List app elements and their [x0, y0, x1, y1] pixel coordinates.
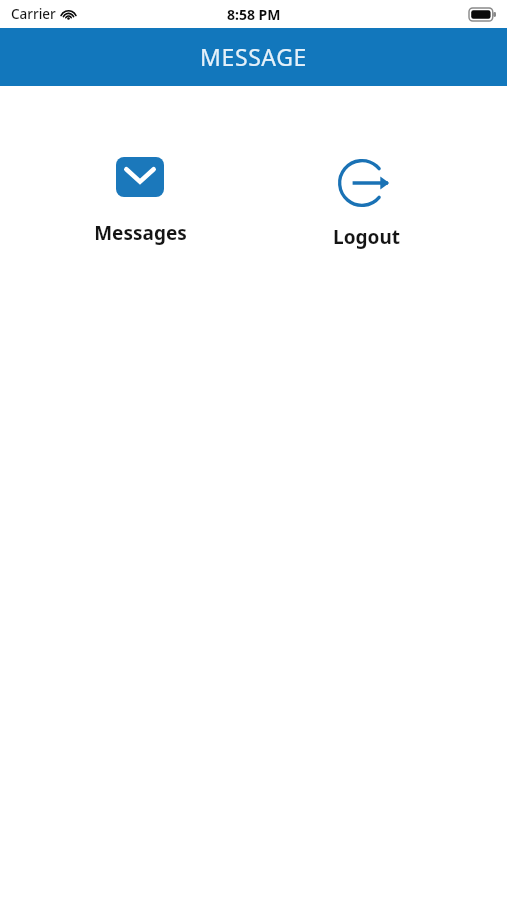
other: Logout [336, 157, 398, 209]
button[interactable]: Logout [318, 157, 415, 250]
staticText: Carrier [11, 5, 56, 23]
staticText: Messages [94, 220, 187, 246]
staticText: 8:58 PM [227, 5, 281, 24]
staticText: Logout [333, 224, 400, 250]
button[interactable]: Messages [92, 157, 188, 246]
staticText: MESSAGE [200, 41, 307, 72]
